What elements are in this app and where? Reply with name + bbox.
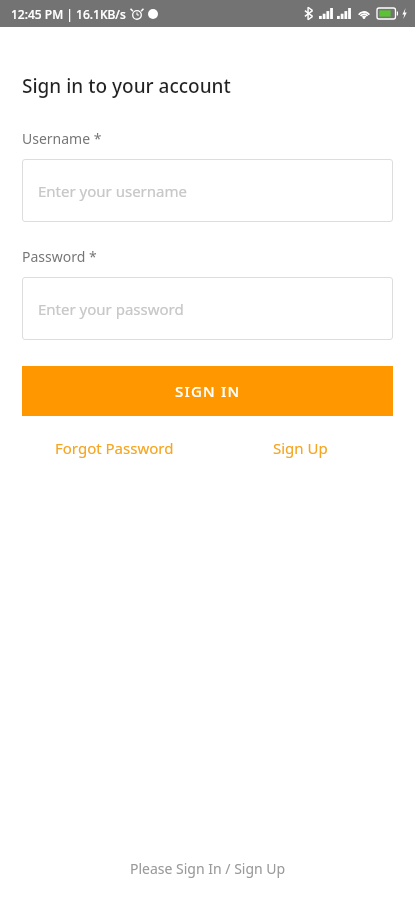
staticText: 12:45 PM | 16.1KB/s [11, 6, 126, 22]
staticText: Enter your password [38, 299, 184, 319]
staticText: Sign in to your account [22, 73, 231, 99]
button[interactable]: Sign Up [207, 433, 393, 463]
staticText: Forgot Password [55, 438, 174, 458]
staticText: SIGN IN [175, 381, 241, 401]
button[interactable]: Forgot Password [22, 433, 207, 463]
button[interactable]: Enter your password [22, 277, 393, 340]
staticText: Sign Up [273, 438, 328, 458]
button[interactable]: Enter your username [22, 159, 393, 222]
staticText: Password * [22, 247, 97, 266]
staticText: Enter your username [38, 181, 187, 201]
staticText: Username * [22, 129, 102, 148]
staticText: Please Sign In / Sign Up [130, 859, 286, 878]
button[interactable]: SIGN IN [22, 366, 393, 416]
